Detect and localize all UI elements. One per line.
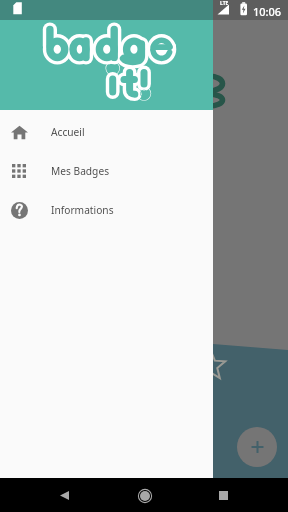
button[interactable]: Mes Badges	[0, 151, 213, 190]
button[interactable]: Home	[128, 479, 161, 512]
staticText: Informations	[51, 203, 114, 217]
staticText: Accueil	[51, 125, 85, 139]
button[interactable]: Informations	[0, 190, 213, 229]
staticText: LTE	[220, 0, 229, 7]
staticText: Mes Badges	[51, 164, 110, 178]
button[interactable]: Back	[48, 479, 81, 512]
button[interactable]: Recent apps	[207, 479, 240, 512]
staticText: 10:06	[253, 4, 282, 19]
button[interactable]: Accueil	[0, 112, 213, 151]
